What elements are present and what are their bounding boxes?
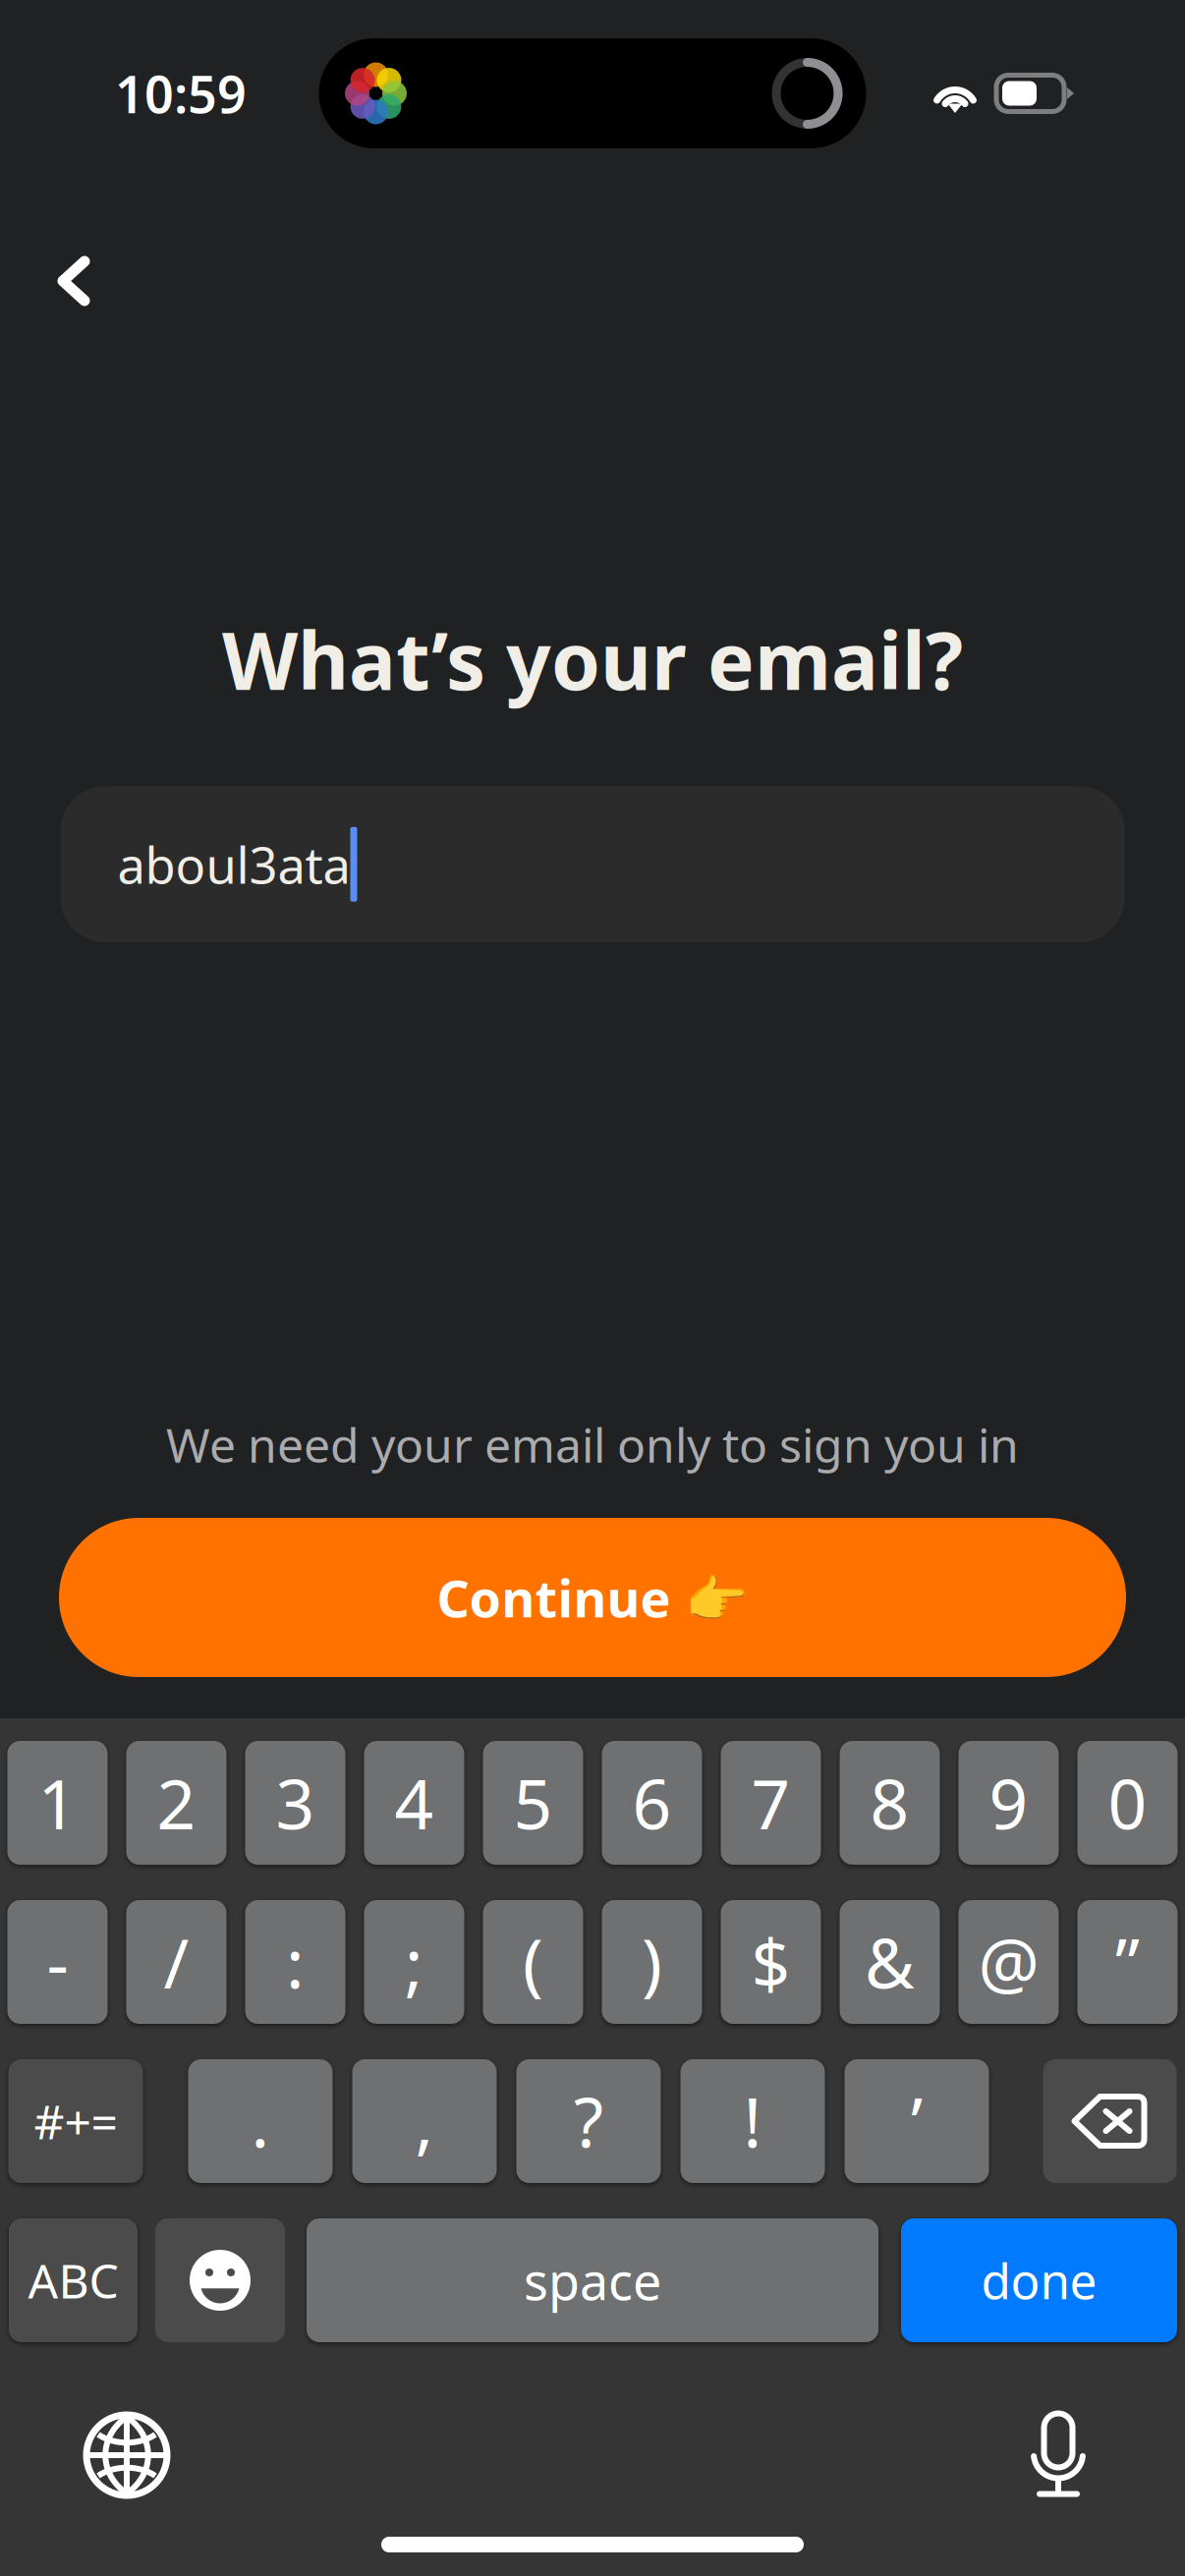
staticText: ’ xyxy=(911,2076,923,2166)
staticText: 10:59 xyxy=(115,59,247,127)
button[interactable]: Email address xyxy=(60,786,1125,942)
staticText: : xyxy=(286,1917,305,2007)
button[interactable]: ! xyxy=(680,2059,825,2183)
staticText: ! xyxy=(743,2076,762,2166)
staticText: ” xyxy=(1115,1917,1140,2007)
staticText: 3 xyxy=(276,1758,315,1848)
button[interactable]: ” xyxy=(1077,1900,1178,2024)
staticText: ( xyxy=(523,1917,543,2007)
staticText: 2 xyxy=(157,1758,196,1848)
staticText: ; xyxy=(405,1917,423,2007)
staticText: $ xyxy=(751,1917,790,2007)
button[interactable]: Emoji xyxy=(155,2218,285,2342)
staticText: done xyxy=(981,2248,1097,2312)
staticText: - xyxy=(47,1917,68,2007)
button[interactable]: 5 xyxy=(483,1741,583,1865)
staticText: aboul3ata xyxy=(117,831,350,897)
button[interactable]: 2 xyxy=(126,1741,226,1865)
button[interactable]: Continue 👉 xyxy=(59,1518,1126,1677)
button[interactable]: 1 xyxy=(7,1741,108,1865)
button[interactable]: ? xyxy=(516,2059,661,2183)
button[interactable]: ) xyxy=(602,1900,702,2024)
button[interactable]: Change keyboard xyxy=(63,2397,191,2513)
staticText: 0 xyxy=(1108,1758,1147,1848)
button[interactable]: 7 xyxy=(721,1741,821,1865)
button[interactable]: Back xyxy=(20,227,128,335)
button[interactable]: #+= xyxy=(8,2059,143,2183)
staticText: We need your email only to sign you in xyxy=(166,1413,1019,1476)
staticText: 5 xyxy=(513,1758,553,1848)
staticText: Continue 👉 xyxy=(437,1564,748,1631)
staticText: @ xyxy=(978,1917,1039,2007)
staticText: ? xyxy=(574,2076,603,2166)
button[interactable]: ’ xyxy=(845,2059,989,2183)
button[interactable]: ABC xyxy=(9,2218,138,2342)
staticText: What’s your email? xyxy=(222,607,963,711)
staticText: 1 xyxy=(38,1758,77,1848)
staticText: , xyxy=(415,2076,434,2166)
staticText: & xyxy=(865,1917,915,2007)
staticText: space xyxy=(524,2246,661,2314)
staticText: 7 xyxy=(751,1758,790,1848)
button[interactable]: space xyxy=(307,2218,878,2342)
staticText: . xyxy=(251,2076,270,2166)
button[interactable]: done xyxy=(901,2218,1177,2342)
staticText: 8 xyxy=(870,1758,909,1848)
button[interactable]: ; xyxy=(364,1900,464,2024)
staticText: / xyxy=(164,1917,189,2007)
staticText: 4 xyxy=(395,1758,434,1848)
staticText: 9 xyxy=(989,1758,1028,1848)
button[interactable]: ( xyxy=(483,1900,583,2024)
button[interactable]: 8 xyxy=(840,1741,940,1865)
button[interactable]: 3 xyxy=(245,1741,345,1865)
button[interactable]: 6 xyxy=(602,1741,702,1865)
staticText: ABC xyxy=(28,2249,118,2312)
staticText: 6 xyxy=(632,1758,672,1848)
button[interactable]: 0 xyxy=(1077,1741,1178,1865)
staticText: #+= xyxy=(34,2090,117,2152)
button[interactable]: - xyxy=(7,1900,108,2024)
button[interactable]: Delete xyxy=(1043,2059,1177,2183)
button[interactable]: 4 xyxy=(364,1741,464,1865)
staticText: ) xyxy=(642,1917,662,2007)
button[interactable]: , xyxy=(352,2059,497,2183)
button[interactable]: & xyxy=(840,1900,940,2024)
button[interactable]: $ xyxy=(721,1900,821,2024)
button[interactable]: . xyxy=(188,2059,333,2183)
button[interactable]: Dictate xyxy=(994,2397,1122,2513)
button[interactable]: : xyxy=(245,1900,345,2024)
button[interactable]: @ xyxy=(959,1900,1059,2024)
button[interactable]: 9 xyxy=(959,1741,1059,1865)
button[interactable]: / xyxy=(126,1900,226,2024)
